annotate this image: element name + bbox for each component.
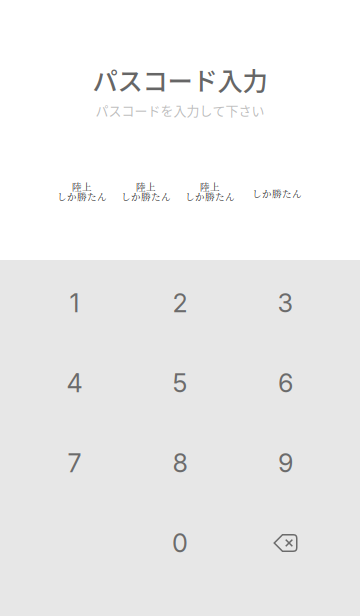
button[interactable]: 6	[233, 343, 338, 423]
staticText: しか勝たん	[121, 189, 171, 203]
staticText: しか勝たん	[185, 189, 235, 203]
staticText: 陸上	[72, 179, 92, 193]
staticText: 1	[69, 288, 79, 318]
staticText: 6	[278, 368, 293, 398]
staticText: パスコードを入力して下さい	[95, 101, 264, 119]
button[interactable]: 1	[22, 263, 127, 343]
button[interactable]: 9	[233, 423, 338, 503]
button[interactable]: 2	[127, 263, 233, 343]
staticText: しか勝たん	[57, 189, 107, 203]
staticText: パスコード入力	[92, 61, 267, 98]
staticText: 3	[277, 288, 293, 318]
staticText: 0	[172, 528, 188, 558]
staticText: 2	[172, 288, 187, 318]
button[interactable]: 3	[233, 263, 338, 343]
staticText: 4	[66, 368, 82, 398]
staticText: 陸上	[136, 179, 156, 193]
button[interactable]: 5	[127, 343, 233, 423]
button[interactable]: 4	[22, 343, 127, 423]
staticText: 7	[67, 448, 81, 478]
button[interactable]: 8	[127, 423, 233, 503]
button[interactable]: Delete	[233, 503, 338, 583]
button[interactable]: 0	[127, 503, 233, 583]
button[interactable]: 7	[22, 423, 127, 503]
staticText: 5	[172, 368, 187, 398]
staticText: しか勝たん	[252, 186, 302, 200]
staticText: 8	[172, 448, 187, 478]
staticText: 陸上	[200, 179, 220, 193]
staticText: 9	[278, 448, 293, 478]
